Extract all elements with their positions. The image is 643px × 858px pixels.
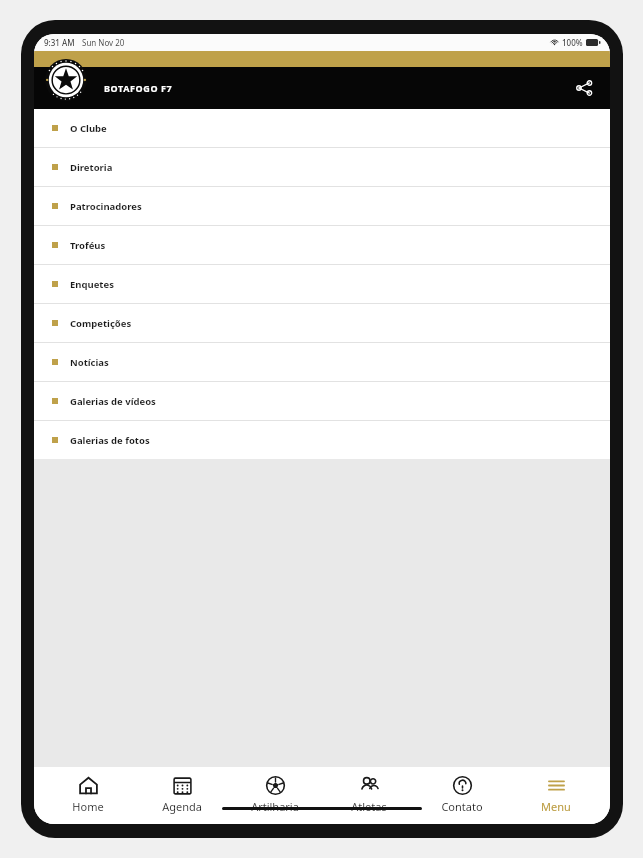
button[interactable]: Notícias	[34, 343, 610, 381]
button[interactable]: Diretoria	[34, 148, 610, 186]
staticText: Patrocinadores	[70, 200, 142, 213]
button[interactable]: Artilharia	[236, 773, 314, 816]
staticText: Contato	[441, 799, 483, 814]
button[interactable]: Agenda	[143, 773, 221, 816]
button[interactable]: Share	[570, 74, 598, 102]
staticText: Enquetes	[70, 278, 114, 291]
button[interactable]: Galerias de vídeos	[34, 382, 610, 420]
button[interactable]: Home	[49, 773, 127, 816]
staticText: Artilharia	[251, 799, 299, 814]
button[interactable]: Atletas	[330, 773, 408, 816]
staticText: Notícias	[70, 356, 109, 369]
button[interactable]: O Clube	[34, 109, 610, 147]
button[interactable]: Galerias de fotos	[34, 421, 610, 459]
button[interactable]: Enquetes	[34, 265, 610, 303]
staticText: O Clube	[70, 122, 107, 135]
staticText: Agenda	[162, 799, 202, 814]
button[interactable]: Contato	[423, 773, 501, 816]
staticText: Galerias de fotos	[70, 434, 150, 447]
staticText: Menu	[541, 799, 571, 814]
staticText: Troféus	[70, 239, 106, 252]
staticText: Diretoria	[70, 161, 113, 174]
staticText: BOTAFOGO F7	[104, 82, 173, 94]
staticText: Sun Nov 20	[82, 37, 125, 48]
button[interactable]: Botafogo F7 logo	[43, 59, 89, 101]
staticText: 100%	[562, 37, 583, 48]
button[interactable]: Menu	[517, 773, 595, 816]
staticText: Competições	[70, 317, 132, 330]
staticText: Atletas	[351, 799, 387, 814]
staticText: 9:31 AM	[44, 37, 75, 48]
staticText: Galerias de vídeos	[70, 395, 156, 408]
button[interactable]: Troféus	[34, 226, 610, 264]
button[interactable]: Patrocinadores	[34, 187, 610, 225]
staticText: Home	[72, 799, 104, 814]
button[interactable]: Competições	[34, 304, 610, 342]
